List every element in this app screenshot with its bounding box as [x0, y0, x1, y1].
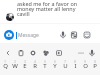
staticText: 1 — [4, 60, 6, 64]
staticText: Y — [53, 62, 57, 70]
button[interactable]: Sticker suggestions — [41, 48, 51, 58]
button[interactable]: 8 — [70, 56, 80, 75]
button[interactable]: Open camera — [4, 30, 14, 40]
staticText: W — [12, 62, 18, 70]
staticText: I — [74, 62, 77, 70]
button[interactable]: More options — [76, 48, 86, 58]
staticText: 8 — [74, 60, 76, 64]
button[interactable]: Clipboard — [16, 48, 26, 58]
staticText: O — [83, 62, 88, 70]
staticText: U — [63, 62, 68, 70]
button[interactable]: asked me for a favor on money matter all… — [17, 0, 81, 18]
button[interactable]: Keyboard settings — [28, 48, 38, 58]
staticText: 3 — [24, 60, 26, 64]
button[interactable]: Voice typing — [87, 48, 97, 58]
button[interactable]: Sender profile photo — [6, 13, 14, 21]
staticText: 9 — [84, 60, 86, 64]
button[interactable]: Expand toolbar — [3, 48, 13, 58]
button[interactable]: 7 — [60, 56, 70, 75]
staticText: E — [23, 62, 27, 70]
button[interactable]: Send photo — [69, 30, 79, 40]
button[interactable]: 2 — [10, 56, 20, 75]
staticText: 6 — [54, 60, 56, 64]
button[interactable]: Translate — [54, 48, 64, 58]
button[interactable]: 9 — [80, 56, 90, 75]
staticText: 0 — [94, 60, 96, 64]
staticText: 5 — [44, 60, 46, 64]
staticText: P — [93, 62, 97, 70]
button[interactable]: 6 — [50, 56, 60, 75]
staticText: 7 — [64, 60, 66, 64]
staticText: Q — [3, 62, 8, 70]
button[interactable]: Record voice message — [58, 30, 68, 40]
button[interactable]: 5 — [40, 56, 50, 75]
staticText: 2 — [14, 60, 16, 64]
button[interactable]: Stickers — [82, 30, 92, 40]
button[interactable]: 1 — [0, 56, 10, 75]
staticText: T — [43, 62, 47, 70]
button[interactable]: 3 — [20, 56, 30, 75]
button[interactable]: 0 — [90, 56, 100, 75]
staticText: R — [33, 62, 37, 70]
button[interactable]: 4 — [30, 56, 40, 75]
staticText: 4 — [34, 60, 36, 64]
button[interactable]: Message — [18, 32, 58, 39]
